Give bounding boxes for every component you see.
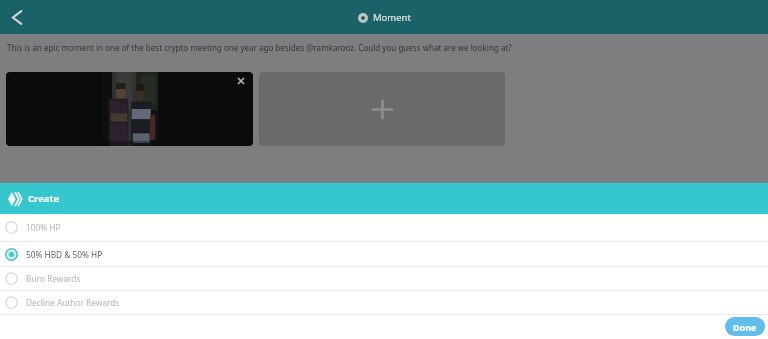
staticText: Burn Rewards xyxy=(26,273,81,284)
button[interactable]: Burn Rewards xyxy=(0,267,768,290)
button[interactable]: 100% HP xyxy=(0,214,768,241)
staticText: 50% HBD & 50% HP xyxy=(26,249,103,260)
staticText: Moment xyxy=(373,11,411,24)
staticText: Decline Author Rewards xyxy=(26,297,120,308)
button[interactable]: Create xyxy=(0,183,768,214)
button[interactable]: Remove image xyxy=(234,74,248,88)
staticText: 100% HP xyxy=(26,222,61,233)
button[interactable]: Decline Author Rewards xyxy=(0,291,768,314)
staticText: This is an epic moment in one of the bes… xyxy=(7,42,512,53)
staticText: Done xyxy=(733,321,757,333)
button[interactable]: Done xyxy=(725,317,765,336)
button[interactable]: Remove image xyxy=(6,72,253,146)
button[interactable]: 50% HBD & 50% HP xyxy=(0,242,768,266)
staticText: Create xyxy=(28,192,60,205)
button[interactable]: Back xyxy=(5,6,28,29)
